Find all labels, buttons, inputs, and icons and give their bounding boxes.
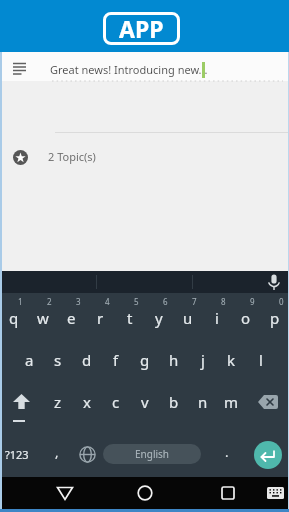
staticText: 2 Topic(s) <box>48 149 96 164</box>
staticText: APP <box>119 13 164 44</box>
staticText: f <box>113 350 119 370</box>
staticText: o <box>241 308 251 328</box>
staticText: y <box>155 308 163 328</box>
button[interactable] <box>267 487 284 499</box>
staticText: , <box>55 443 59 461</box>
button[interactable]: m <box>217 377 246 419</box>
button[interactable]: . <box>217 438 237 466</box>
staticText: i <box>215 308 219 328</box>
staticText: 9 <box>250 296 255 307</box>
staticText: 6 <box>163 296 168 307</box>
staticText: t <box>127 308 133 328</box>
button[interactable]: w <box>28 293 57 335</box>
staticText: l <box>259 350 263 370</box>
staticText: e <box>67 308 76 328</box>
button[interactable]: s <box>43 335 72 377</box>
staticText: s <box>54 350 62 370</box>
button[interactable]: English <box>103 444 201 464</box>
button[interactable]: c <box>101 377 130 419</box>
button[interactable]: u <box>173 293 202 335</box>
button[interactable]: e <box>57 293 86 335</box>
staticText: c <box>112 392 120 412</box>
button[interactable]: f <box>101 335 130 377</box>
staticText: English <box>135 447 170 461</box>
button[interactable]: p <box>260 293 289 335</box>
staticText: 7 <box>192 296 197 307</box>
staticText: 4 <box>105 296 110 307</box>
button[interactable]: d <box>72 335 101 377</box>
button[interactable]: APP <box>103 12 180 45</box>
button[interactable] <box>266 274 282 291</box>
button[interactable]: h <box>159 335 188 377</box>
button[interactable]: v <box>130 377 159 419</box>
staticText: 3 <box>76 296 81 307</box>
staticText: . <box>225 443 229 461</box>
button[interactable]: i <box>202 293 231 335</box>
staticText: j <box>201 350 205 370</box>
staticText: m <box>224 392 239 412</box>
button[interactable]: y <box>144 293 173 335</box>
button[interactable] <box>254 441 282 469</box>
staticText: q <box>9 308 19 328</box>
button[interactable]: l <box>246 335 275 377</box>
staticText: n <box>198 392 208 412</box>
button[interactable] <box>221 486 235 500</box>
button[interactable]: n <box>188 377 217 419</box>
button[interactable]: b <box>159 377 188 419</box>
button[interactable]: k <box>217 335 246 377</box>
button[interactable]: r <box>86 293 115 335</box>
staticText: h <box>169 350 179 370</box>
staticText: 1 <box>18 296 23 307</box>
staticText: x <box>83 392 91 412</box>
button[interactable]: x <box>72 377 101 419</box>
staticText: 0 <box>279 296 284 307</box>
staticText: p <box>270 308 280 328</box>
button[interactable]: 2 Topic(s) <box>48 144 168 168</box>
button[interactable] <box>246 377 289 419</box>
button[interactable]: g <box>130 335 159 377</box>
staticText: b <box>169 392 179 412</box>
staticText: Great news! Introducing new... <box>50 62 208 77</box>
staticText: v <box>141 392 149 412</box>
button[interactable] <box>137 485 153 501</box>
button[interactable]: a <box>15 335 43 377</box>
staticText: z <box>54 392 62 412</box>
staticText: 5 <box>134 296 139 307</box>
staticText: g <box>140 350 150 370</box>
staticText: ?123 <box>5 447 29 462</box>
staticText: d <box>82 350 92 370</box>
staticText: w <box>37 308 49 328</box>
button[interactable]: Great news! Introducing new... <box>50 56 280 82</box>
staticText: a <box>25 350 34 370</box>
staticText: u <box>183 308 193 328</box>
button[interactable]: t <box>115 293 144 335</box>
staticText: k <box>227 350 236 370</box>
button[interactable]: z <box>43 377 72 419</box>
button[interactable] <box>56 486 74 501</box>
button[interactable] <box>79 446 96 463</box>
button[interactable]: q <box>0 293 28 335</box>
staticText: 8 <box>221 296 226 307</box>
button[interactable]: ?123 <box>1 440 33 468</box>
button[interactable]: , <box>47 438 67 466</box>
button[interactable]: o <box>231 293 260 335</box>
staticText: 2 <box>47 296 52 307</box>
button[interactable]: j <box>188 335 217 377</box>
button[interactable] <box>0 377 43 419</box>
staticText: r <box>97 308 104 328</box>
